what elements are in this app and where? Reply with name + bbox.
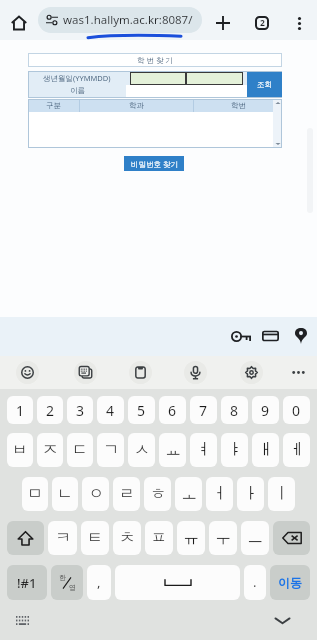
staticText: 2 [260,17,265,29]
button[interactable]: More options [283,357,313,387]
button[interactable]: Passwords [227,322,255,350]
staticText: ㅛ [165,440,181,460]
button[interactable]: 9 [252,396,279,424]
button[interactable]: Clipboard [125,357,155,387]
button[interactable]: ㅛ [159,433,186,467]
button[interactable]: ㅎ [144,477,171,511]
button[interactable]: 이동 [270,565,310,600]
staticText: 7 [199,401,208,420]
button[interactable]: 비밀번호 찾기 [124,156,184,171]
staticText: , [97,573,101,591]
button[interactable]: Space [115,565,240,600]
button[interactable]: Shift [7,521,44,555]
button[interactable]: ㅍ [145,521,173,555]
staticText: 학번 [231,101,246,110]
staticText: ㅇ [88,484,104,504]
staticText: ㅂ [12,440,28,460]
button[interactable]: ㄴ [52,477,78,511]
button[interactable]: 0 [283,396,310,424]
button[interactable]: Stickers [70,357,100,387]
staticText: was1.hallym.ac.kr:8087/ [63,12,193,28]
staticText: ㄷ [72,440,88,460]
button[interactable]: ㅕ [190,433,217,467]
button[interactable]: . [244,565,266,600]
staticText: 8 [230,401,239,420]
staticText: 비밀번호 찾기 [131,159,178,169]
button[interactable]: 6 [159,396,186,424]
button[interactable]: ㄹ [113,477,140,511]
button[interactable]: ㄱ [97,433,124,467]
button[interactable]: was1.hallym.ac.kr:8087/ [38,7,202,33]
button[interactable]: ㅇ [82,477,109,511]
staticText: ㅈ [42,440,58,460]
staticText: ㄱ [103,440,119,460]
button[interactable]: Settings [236,357,266,387]
staticText: 학과 [129,101,144,110]
button[interactable]: More options [285,9,313,37]
staticText: ㅜ [215,528,231,548]
button[interactable]: ㅋ [48,521,77,555]
staticText: 6 [168,401,177,420]
staticText: ㅕ [196,440,212,460]
button[interactable]: Payment methods [256,322,284,350]
button[interactable]: Home [5,9,33,37]
button[interactable]: ㅑ [221,433,248,467]
staticText: ㅎ [150,484,166,504]
button[interactable]: Voice input [180,357,210,387]
button[interactable]: ㅓ [206,477,233,511]
button[interactable]: 3 [67,396,93,424]
staticText: ㅓ [212,484,228,504]
staticText: 4 [106,401,115,420]
button[interactable]: ㅡ [241,521,269,555]
button[interactable]: , [87,565,111,600]
button[interactable]: 4 [97,396,124,424]
button[interactable]: ㅂ [7,433,33,467]
button[interactable]: Tabs [248,9,276,37]
button[interactable]: !#1 [7,565,47,600]
button[interactable]: ㅣ [268,477,295,511]
staticText: !#1 [17,574,37,592]
staticText: ㅡ [247,528,263,548]
button[interactable]: ㅏ [237,477,264,511]
button[interactable]: Emoji [12,357,42,387]
staticText: 1 [16,401,25,420]
button[interactable]: 2 [37,396,63,424]
button[interactable]: 1 [7,396,33,424]
staticText: 영 [69,583,76,592]
button[interactable]: ㅜ [209,521,237,555]
staticText: ㅊ [119,528,135,548]
button[interactable]: 조회 [247,72,282,97]
staticText: ㄹ [119,484,135,504]
staticText: ㅠ [183,528,199,548]
staticText: ㅍ [151,528,167,548]
staticText: 5 [137,401,146,420]
staticText: 2 [46,401,55,420]
button[interactable]: 8 [221,396,248,424]
staticText: 한 [59,573,66,582]
staticText: . [253,573,257,591]
button[interactable]: ㅐ [252,433,279,467]
button[interactable]: Addresses [287,322,315,350]
button[interactable]: ㅊ [113,521,141,555]
staticText: 3 [76,401,85,420]
staticText: 이동 [278,575,302,590]
button[interactable]: Language [51,565,83,600]
button[interactable]: 7 [190,396,217,424]
button[interactable]: Backspace [273,521,310,555]
button[interactable]: ㅅ [128,433,155,467]
button[interactable]: ㅠ [177,521,205,555]
button[interactable]: Hide keyboard [269,607,295,633]
button[interactable]: ㅈ [37,433,63,467]
button[interactable]: ㄷ [67,433,93,467]
button[interactable]: ㅗ [175,477,202,511]
staticText: ㅣ [274,484,290,504]
staticText: ㅋ [55,528,71,548]
staticText: 9 [261,401,270,420]
button[interactable]: ㅌ [81,521,109,555]
button[interactable]: ㅔ [283,433,310,467]
button[interactable]: 5 [128,396,155,424]
staticText: ㅅ [134,440,150,460]
button[interactable]: New tab [209,9,237,37]
button[interactable]: ㅁ [22,477,48,511]
button[interactable]: Switch keyboard [11,609,33,631]
